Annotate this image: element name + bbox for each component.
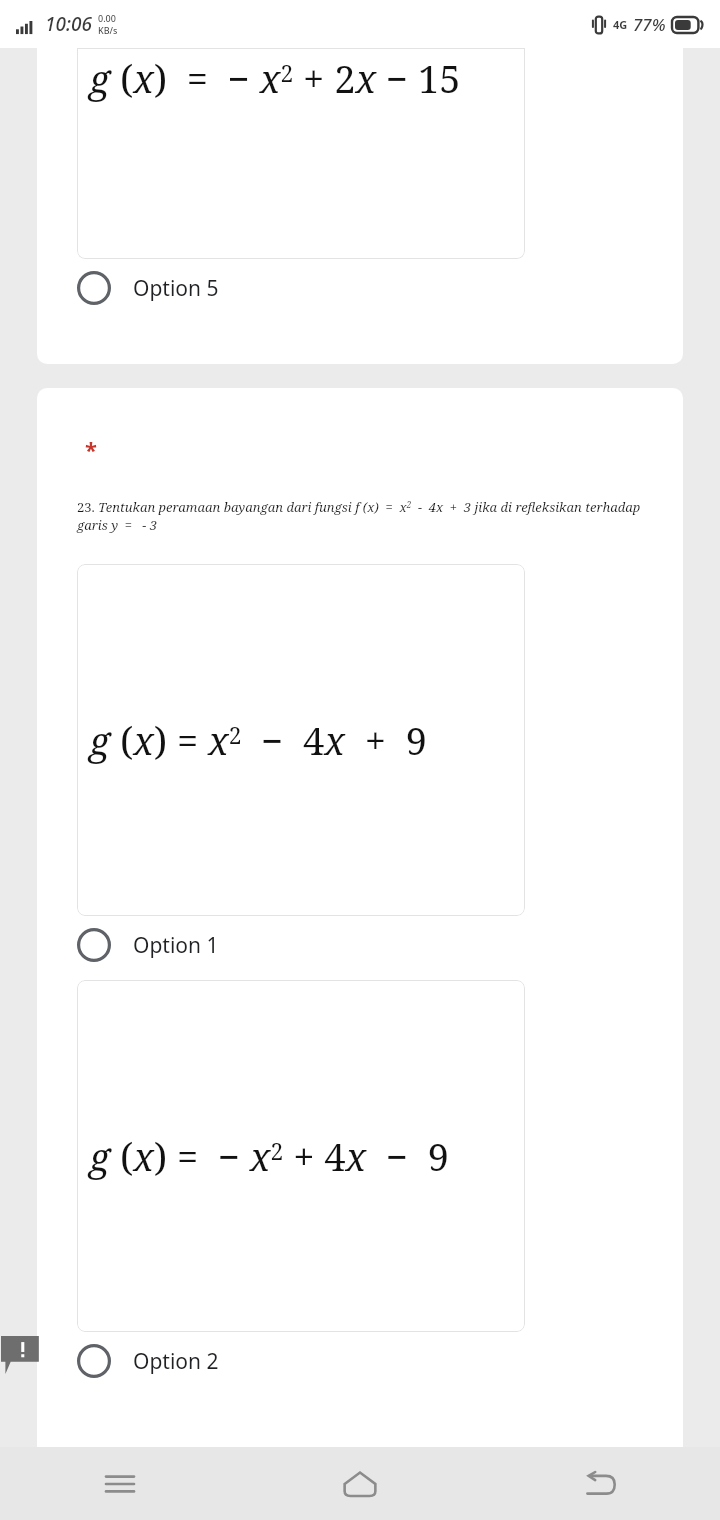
button[interactable]: Recent apps <box>90 1454 150 1514</box>
button[interactable]: Send feedback <box>0 1335 46 1375</box>
button[interactable]: g (x) = − x2 + 2x − 15 <box>77 48 525 259</box>
staticText: 10:06 <box>45 11 92 37</box>
staticText: KB/s <box>98 24 118 36</box>
staticText: 77% <box>633 13 666 36</box>
button[interactable]: Option 2 <box>37 1332 683 1390</box>
staticText: Option 5 <box>133 274 219 303</box>
staticText: * <box>85 434 97 464</box>
button[interactable]: Option 1 <box>37 916 683 974</box>
staticText: 4G <box>613 17 628 32</box>
button[interactable]: g (x) = − x2 + 4x − 9 <box>77 980 525 1332</box>
staticText: Option 2 <box>133 1347 219 1376</box>
staticText: g (x) = − x2 + 4x − 9 <box>89 1130 450 1182</box>
staticText: g (x) = x2 − 4x + 9 <box>89 714 428 766</box>
button[interactable]: Back <box>570 1454 630 1514</box>
button[interactable]: Home <box>330 1454 390 1514</box>
staticText: 23. Tentukan peramaan bayangan dari fung… <box>77 498 667 534</box>
staticText: Option 1 <box>133 931 219 960</box>
staticText: g (x) = − x2 + 2x − 15 <box>89 52 461 104</box>
button[interactable]: Option 5 <box>37 259 683 317</box>
button[interactable]: g (x) = x2 − 4x + 9 <box>77 564 525 916</box>
staticText: 0.00 <box>98 12 116 24</box>
